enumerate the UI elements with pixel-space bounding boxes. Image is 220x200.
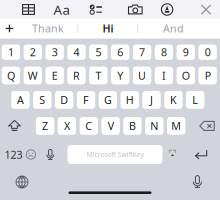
button[interactable]: H [120,91,139,109]
staticText: 8 [161,45,167,59]
button[interactable]: Close [193,0,219,19]
button[interactable]: G [99,91,117,109]
button[interactable]: 4 [67,44,86,60]
staticText: U [138,68,146,83]
button[interactable]: Delete [194,117,220,135]
button[interactable]: 3 [45,44,64,60]
button[interactable]: Aa [48,0,74,19]
staticText: 123 [4,147,22,162]
button[interactable]: Y [111,67,129,84]
button[interactable]: W [24,67,42,84]
button[interactable]: O [177,67,195,84]
staticText: H [126,93,134,107]
button[interactable]: X [58,117,76,135]
staticText: X [64,119,70,133]
button[interactable]: K [164,91,183,109]
staticText: P [205,68,211,83]
button[interactable]: 5 [89,44,108,60]
button[interactable]: L [186,91,204,109]
button[interactable]: E [45,67,64,84]
staticText: Y [117,68,123,83]
button[interactable]: Insert table [15,0,41,19]
button[interactable]: J [142,91,161,109]
button[interactable]: Shift [1,117,27,135]
staticText: L [192,93,198,107]
staticText: 4 [73,45,79,59]
staticText: A [17,93,24,107]
staticText: G [104,93,112,107]
button[interactable]: Camera [122,0,148,19]
button[interactable]: Dictation [185,170,209,194]
button[interactable]: R [67,67,86,84]
button[interactable]: V [101,117,120,135]
button[interactable]: Q [2,67,20,84]
button[interactable]: Hi [78,18,137,39]
staticText: M [171,119,181,133]
button[interactable]: 6 [111,44,129,60]
button[interactable]: Thank [19,18,77,39]
button[interactable]: 7 [133,44,151,60]
button[interactable]: And [138,18,209,39]
staticText: I [162,68,166,83]
button[interactable]: Z [36,117,54,135]
staticText: Microsoft SwiftKey [86,150,143,159]
staticText: Thank [32,21,64,36]
button[interactable]: Markup [154,0,180,19]
staticText: 9 [183,45,189,59]
staticText: N [150,119,158,133]
staticText: S [39,93,45,107]
staticText: T [95,68,101,83]
staticText: 2 [30,45,36,59]
button[interactable]: 0 [198,44,217,60]
button[interactable]: Add [0,18,19,39]
button[interactable]: Microsoft SwiftKey [67,145,162,164]
button[interactable]: 9 [177,44,195,60]
button[interactable]: N [145,117,164,135]
staticText: 1 [8,45,14,59]
staticText: 5 [95,45,101,59]
staticText: 7 [139,45,145,59]
staticText: V [108,119,114,133]
button[interactable]: C [80,117,98,135]
staticText: D [60,93,68,107]
button[interactable]: M [167,117,185,135]
staticText: 0 [205,45,211,59]
button[interactable]: D [55,91,73,109]
staticText: J [150,93,153,107]
staticText: O [182,68,190,83]
staticText: F [83,93,89,107]
staticText: 3 [52,45,58,59]
button[interactable]: 2 [24,44,42,60]
button[interactable]: 1 [2,44,20,60]
button[interactable]: B [123,117,142,135]
button[interactable]: 123 [3,145,23,164]
staticText: R [73,68,80,83]
staticText: Hi [102,21,113,36]
button[interactable]: Return [190,145,212,164]
button[interactable]: S [33,91,52,109]
staticText: E [52,68,58,83]
staticText: B [129,119,136,133]
button[interactable]: P [198,67,217,84]
button[interactable]: Dictate [41,145,59,164]
staticText: W [28,68,38,83]
staticText: K [170,93,177,107]
button[interactable]: Next keyboard [10,170,34,194]
staticText: And [163,21,184,36]
button[interactable]: T [89,67,108,84]
staticText: Aa [53,1,69,18]
staticText: C [85,119,92,133]
staticText: Q [7,68,15,83]
staticText: Z [42,119,48,133]
button[interactable]: A [11,91,30,109]
staticText: 6 [117,45,123,59]
button[interactable]: Resize keyboard [163,145,181,164]
button[interactable]: I [155,67,173,84]
button[interactable]: U [133,67,151,84]
button[interactable]: Emoji [22,145,40,164]
button[interactable]: 8 [155,44,173,60]
button[interactable]: Lists [83,0,109,19]
button[interactable]: F [77,91,95,109]
